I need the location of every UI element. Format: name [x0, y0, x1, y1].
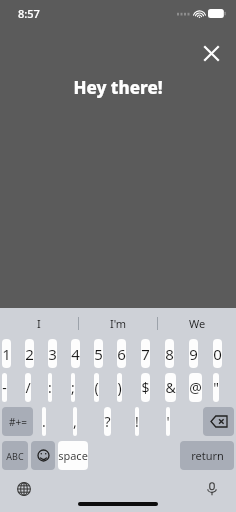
button[interactable]: &	[165, 373, 176, 402]
button[interactable]: /	[25, 373, 31, 402]
staticText: I	[37, 316, 41, 331]
staticText: 3	[48, 344, 57, 364]
button[interactable]: 6	[117, 339, 126, 368]
staticText: .	[42, 412, 46, 431]
button[interactable]: Close	[198, 40, 224, 66]
button[interactable]: Change keyboard	[12, 477, 36, 501]
staticText: &	[165, 378, 176, 397]
staticText: )	[117, 378, 122, 397]
staticText: 8:57	[18, 6, 40, 21]
staticText: return	[191, 448, 224, 463]
staticText: @	[189, 378, 202, 397]
button[interactable]: 3	[48, 339, 57, 368]
button[interactable]: Dictation	[200, 477, 224, 501]
button[interactable]: 4	[71, 339, 80, 368]
button[interactable]: I'm	[79, 308, 157, 339]
button[interactable]: I	[0, 308, 78, 339]
staticText: !	[135, 412, 139, 431]
staticText: (	[94, 378, 99, 397]
staticText: ;	[71, 378, 75, 397]
staticText: 0	[213, 344, 222, 364]
staticText: 7	[141, 344, 150, 364]
button[interactable]: We	[158, 308, 236, 339]
button[interactable]: 9	[189, 339, 198, 368]
button[interactable]: )	[117, 373, 122, 402]
staticText: 5	[94, 344, 103, 364]
staticText: space	[58, 448, 88, 463]
button[interactable]: Backspace	[203, 407, 234, 436]
button[interactable]: ABC	[2, 441, 28, 470]
staticText: 2	[25, 344, 34, 364]
button[interactable]: 7	[141, 339, 150, 368]
staticText: ABC	[6, 450, 24, 462]
staticText: -	[2, 378, 7, 397]
staticText: I'm	[110, 316, 127, 331]
button[interactable]: "	[213, 373, 219, 402]
staticText: 9	[189, 344, 198, 364]
button[interactable]: '	[166, 407, 170, 436]
button[interactable]: !	[135, 407, 139, 436]
button[interactable]: 5	[94, 339, 103, 368]
staticText: Hey there!	[73, 76, 163, 99]
button[interactable]: $	[141, 373, 150, 402]
button[interactable]: #+=	[2, 407, 33, 436]
button[interactable]: Emoji	[31, 441, 55, 470]
staticText: '	[166, 412, 170, 431]
button[interactable]: .	[42, 407, 46, 436]
staticText: 6	[117, 344, 126, 364]
staticText: ,	[73, 412, 77, 431]
staticText: /	[25, 378, 31, 397]
button[interactable]: return	[180, 441, 234, 470]
staticText: We	[189, 316, 206, 331]
staticText: $	[141, 378, 150, 397]
staticText: #+=	[9, 415, 27, 429]
button[interactable]: @	[189, 373, 202, 402]
staticText: 8	[165, 344, 174, 364]
staticText: ?	[104, 412, 111, 431]
button[interactable]: space	[58, 441, 88, 470]
button[interactable]: 0	[213, 339, 222, 368]
button[interactable]: :	[48, 373, 52, 402]
button[interactable]: -	[2, 373, 7, 402]
button[interactable]: 8	[165, 339, 174, 368]
button[interactable]: ;	[71, 373, 75, 402]
staticText: 1	[2, 344, 11, 364]
button[interactable]: ?	[104, 407, 111, 436]
button[interactable]: 2	[25, 339, 34, 368]
staticText: :	[48, 378, 52, 397]
button[interactable]: (	[94, 373, 99, 402]
button[interactable]: 1	[2, 339, 11, 368]
staticText: 4	[71, 344, 80, 364]
staticText: "	[213, 378, 219, 397]
button[interactable]: ,	[73, 407, 77, 436]
